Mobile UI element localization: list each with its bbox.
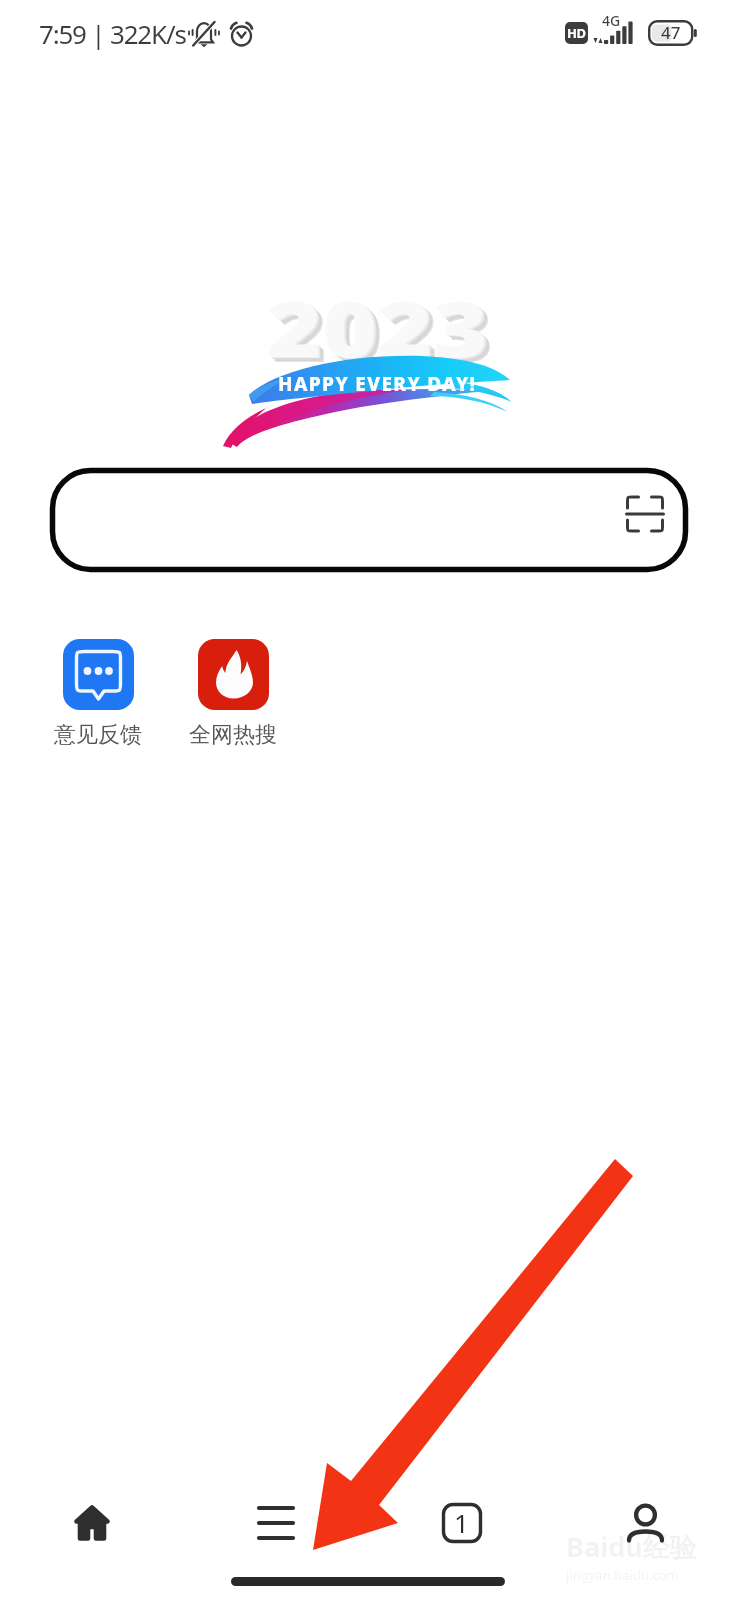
staticText: 4G xyxy=(602,11,621,30)
button[interactable]: Tabs xyxy=(415,1471,507,1575)
staticText: HAPPY EVERY DAY! xyxy=(278,371,477,397)
button[interactable]: 全网热搜 xyxy=(178,634,288,749)
button[interactable]: Menu xyxy=(230,1471,322,1575)
staticText: 全网热搜 xyxy=(189,721,277,749)
staticText: 7:59 | 322K/s xyxy=(39,16,186,51)
button[interactable]: Profile xyxy=(600,1471,692,1575)
staticText: 47 xyxy=(661,21,681,44)
staticText: 2023 xyxy=(272,280,495,383)
button[interactable]: 意见反馈 xyxy=(43,634,153,749)
staticText: HD xyxy=(567,24,586,42)
button[interactable]: Scan QR code xyxy=(50,468,688,572)
button[interactable]: Scan QR code xyxy=(625,495,665,533)
staticText: 意见反馈 xyxy=(54,721,142,749)
staticText: 2023 xyxy=(273,281,496,384)
staticText: 2023 xyxy=(267,276,490,379)
button[interactable]: Home xyxy=(46,1471,138,1575)
staticText: 2023 xyxy=(269,277,492,380)
staticText: 2023 xyxy=(270,278,493,381)
staticText: 1 xyxy=(454,1505,469,1540)
staticText: Baidu经验 xyxy=(566,1528,697,1565)
staticText: jingyan.baidu.com xyxy=(566,1566,679,1584)
